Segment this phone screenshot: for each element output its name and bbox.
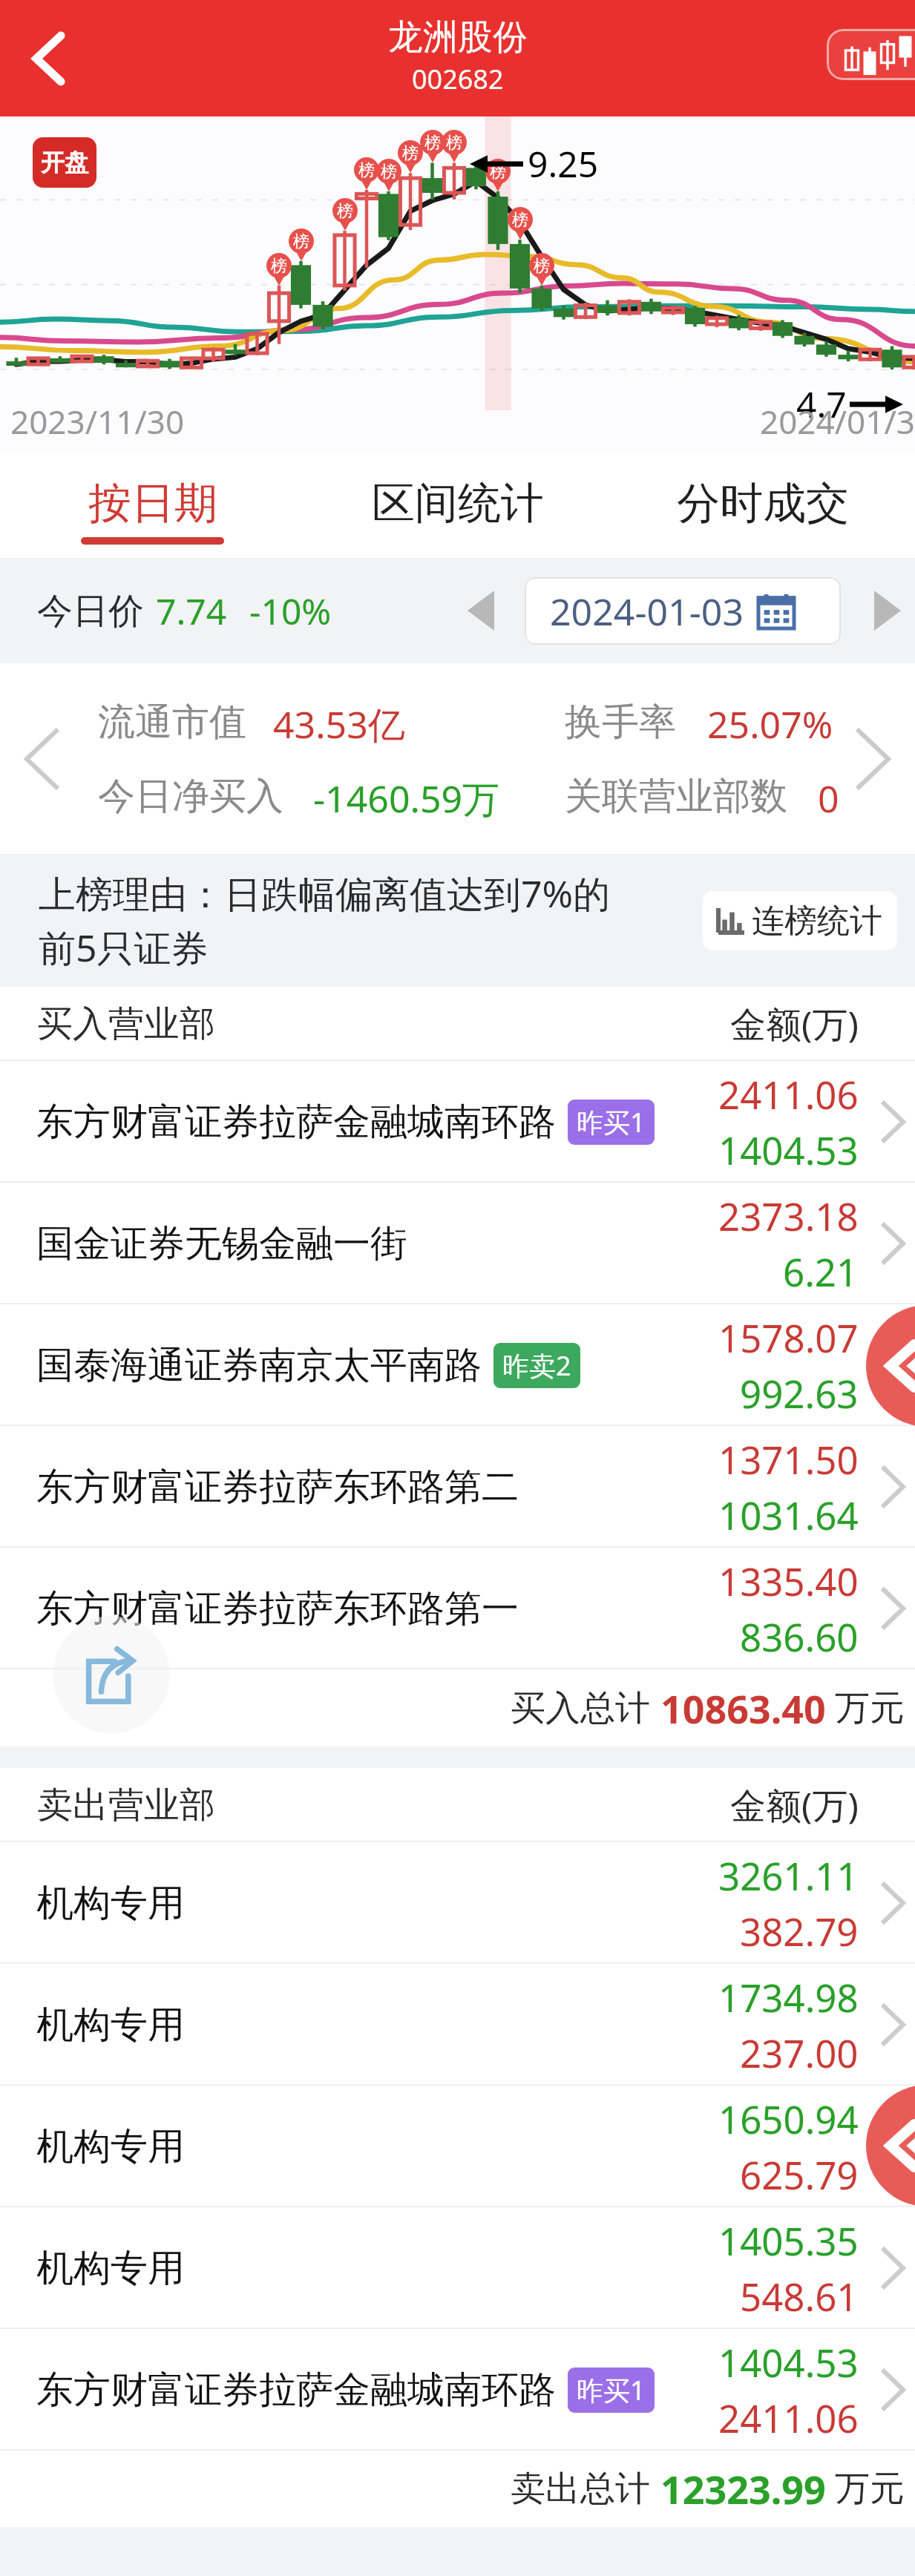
staticText: 国泰海通证券南京太平南路 (36, 1342, 482, 1389)
staticText: 237.00 (740, 2027, 859, 2078)
staticText: 机构专用 (36, 2123, 185, 2170)
staticText: 上榜理由：日跌幅偏离值达到7%的前5只证券 (39, 868, 625, 973)
staticText: 2411.06 (718, 1068, 859, 1120)
button[interactable]: 东方财富证券拉萨金融城南环路 (0, 2329, 915, 2451)
staticText: 1578.07 (718, 1312, 859, 1363)
button[interactable]: Share (53, 1616, 170, 1733)
button[interactable]: 国金证券无锡金融一街 (0, 1183, 915, 1304)
staticText: 流通市值 (98, 699, 246, 745)
staticText: 25.07% (707, 699, 833, 745)
staticText: 1031.64 (718, 1489, 859, 1540)
staticText: 1734.98 (718, 1971, 859, 2023)
button[interactable]: 东方财富证券拉萨东环路第二 (0, 1426, 915, 1548)
staticText: 东方财富证券拉萨金融城南环路 (36, 2367, 556, 2414)
button[interactable]: 连榜统计 (703, 891, 897, 950)
button[interactable]: Collapse (866, 2085, 915, 2207)
staticText: 昨买1 (577, 1104, 646, 1140)
button[interactable]: 2024-01-03 (525, 577, 841, 645)
staticText: 002682 (412, 61, 504, 97)
button[interactable]: Collapse (866, 1305, 915, 1427)
staticText: 43.53亿 (273, 699, 405, 745)
staticText: 机构专用 (36, 1880, 185, 1927)
staticText: 换手率 (565, 699, 676, 745)
staticText: 昨买1 (577, 2372, 646, 2408)
staticText: 机构专用 (36, 2245, 185, 2292)
staticText: 买入营业部 (37, 1002, 215, 1046)
staticText: 1404.53 (718, 2336, 859, 2388)
staticText: 625.79 (740, 2149, 859, 2200)
staticText: 9.25 (528, 139, 599, 188)
staticText: 榜 (402, 143, 419, 164)
staticText: 榜 (490, 162, 506, 183)
staticText: 0 (818, 773, 839, 819)
staticText: 榜 (446, 133, 462, 154)
button[interactable]: 国泰海通证券南京太平南路 (0, 1304, 915, 1426)
staticText: 1371.50 (718, 1433, 859, 1485)
staticText: 榜 (293, 231, 309, 252)
button[interactable]: 机构专用 (0, 2207, 915, 2329)
staticText: 分时成交 (677, 476, 849, 530)
button[interactable]: 按日期 (0, 454, 305, 558)
button[interactable]: Back (0, 10, 96, 107)
staticText: 今日净买入 (98, 773, 283, 819)
staticText: 万元 (835, 1686, 905, 1730)
staticText: 548.61 (740, 2270, 859, 2322)
button[interactable]: 东方财富证券拉萨金融城南环路 (0, 1061, 915, 1183)
button[interactable]: 分时成交 (610, 454, 915, 558)
staticText: 2024/01/3 (760, 399, 915, 444)
staticText: 2411.06 (718, 2392, 859, 2443)
staticText: 榜 (534, 256, 550, 277)
staticText: 东方财富证券拉萨东环路第二 (36, 1464, 519, 1511)
staticText: 1650.94 (718, 2093, 859, 2144)
staticText: 今日价 (37, 589, 144, 634)
staticText: 榜 (337, 201, 353, 222)
staticText: 万元 (835, 2467, 905, 2511)
staticText: 金额(万) (730, 999, 859, 1048)
staticText: 榜 (424, 133, 441, 154)
staticText: 昨卖2 (502, 1347, 571, 1384)
staticText: 开盘 (41, 148, 88, 177)
staticText: 836.60 (740, 1611, 859, 1662)
staticText: 10863.40 (660, 1682, 826, 1735)
staticText: 榜 (512, 210, 528, 231)
staticText: 东方财富证券拉萨东环路第一 (36, 1586, 519, 1632)
staticText: 6.21 (783, 1246, 859, 1297)
staticText: 2373.18 (718, 1190, 859, 1241)
staticText: 992.63 (740, 1367, 859, 1419)
staticText: 1404.53 (718, 1124, 859, 1175)
staticText: 机构专用 (36, 2002, 185, 2048)
button[interactable]: 东方财富证券拉萨东环路第一 (0, 1548, 915, 1669)
staticText: 连榜统计 (752, 901, 882, 942)
staticText: 东方财富证券拉萨金融城南环路 (36, 1099, 556, 1146)
staticText: 12323.99 (660, 2462, 826, 2515)
button[interactable]: Next day (861, 584, 914, 637)
staticText: 4.7 (796, 380, 847, 428)
button[interactable]: Previous day (454, 584, 508, 637)
staticText: -10% (249, 587, 332, 635)
button[interactable]: 机构专用 (0, 1842, 915, 1964)
staticText: 龙洲股份 (388, 16, 528, 59)
staticText: 1405.35 (718, 2215, 859, 2266)
staticText: 关联营业部数 (565, 773, 787, 819)
button[interactable]: 机构专用 (0, 1964, 915, 2086)
staticText: 3261.11 (718, 1850, 859, 1901)
staticText: 1335.40 (718, 1555, 859, 1606)
staticText: 金额(万) (730, 1781, 859, 1830)
button[interactable]: 区间统计 (305, 454, 610, 558)
staticText: 2023/11/30 (10, 399, 185, 444)
button[interactable]: 机构专用 (0, 2086, 915, 2207)
staticText: 榜 (381, 162, 397, 183)
staticText: 国金证券无锡金融一街 (36, 1220, 407, 1267)
staticText: 2024-01-03 (550, 586, 744, 637)
button[interactable]: K line chart (827, 29, 915, 80)
staticText: 382.79 (740, 1905, 859, 1956)
staticText: 榜 (271, 256, 287, 277)
staticText: 买入总计 (511, 1686, 650, 1730)
staticText: 按日期 (88, 476, 217, 530)
staticText: 区间统计 (372, 476, 544, 530)
staticText: 卖出营业部 (37, 1783, 215, 1827)
staticText: 7.74 (156, 587, 227, 635)
staticText: 榜 (358, 160, 375, 181)
staticText: -1460.59万 (313, 773, 500, 819)
staticText: 卖出总计 (511, 2467, 650, 2511)
